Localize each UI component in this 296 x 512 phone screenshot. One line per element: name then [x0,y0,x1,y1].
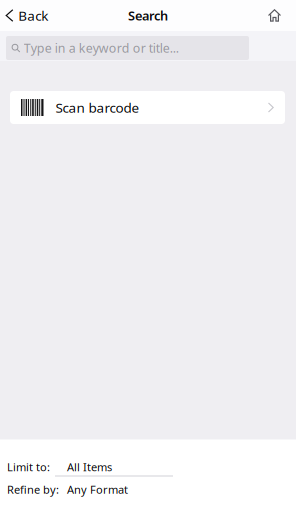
button[interactable]: Home [258,0,296,31]
button[interactable]: Refine by: [0,476,296,512]
staticText: Refine by: [7,482,59,497]
button[interactable]: Scan barcode [10,91,285,124]
staticText: All Items [67,459,112,475]
button[interactable]: Limit to: [0,440,296,476]
staticText: Limit to: [7,459,50,475]
staticText: Search [128,7,168,24]
staticText: Any Format [67,482,128,497]
button[interactable]: Type in a keyword or title... [6,36,249,60]
staticText: Scan barcode [55,98,139,117]
staticText: Back [18,6,48,25]
button[interactable]: Back [0,0,56,31]
staticText: Type in a keyword or title... [24,40,179,56]
